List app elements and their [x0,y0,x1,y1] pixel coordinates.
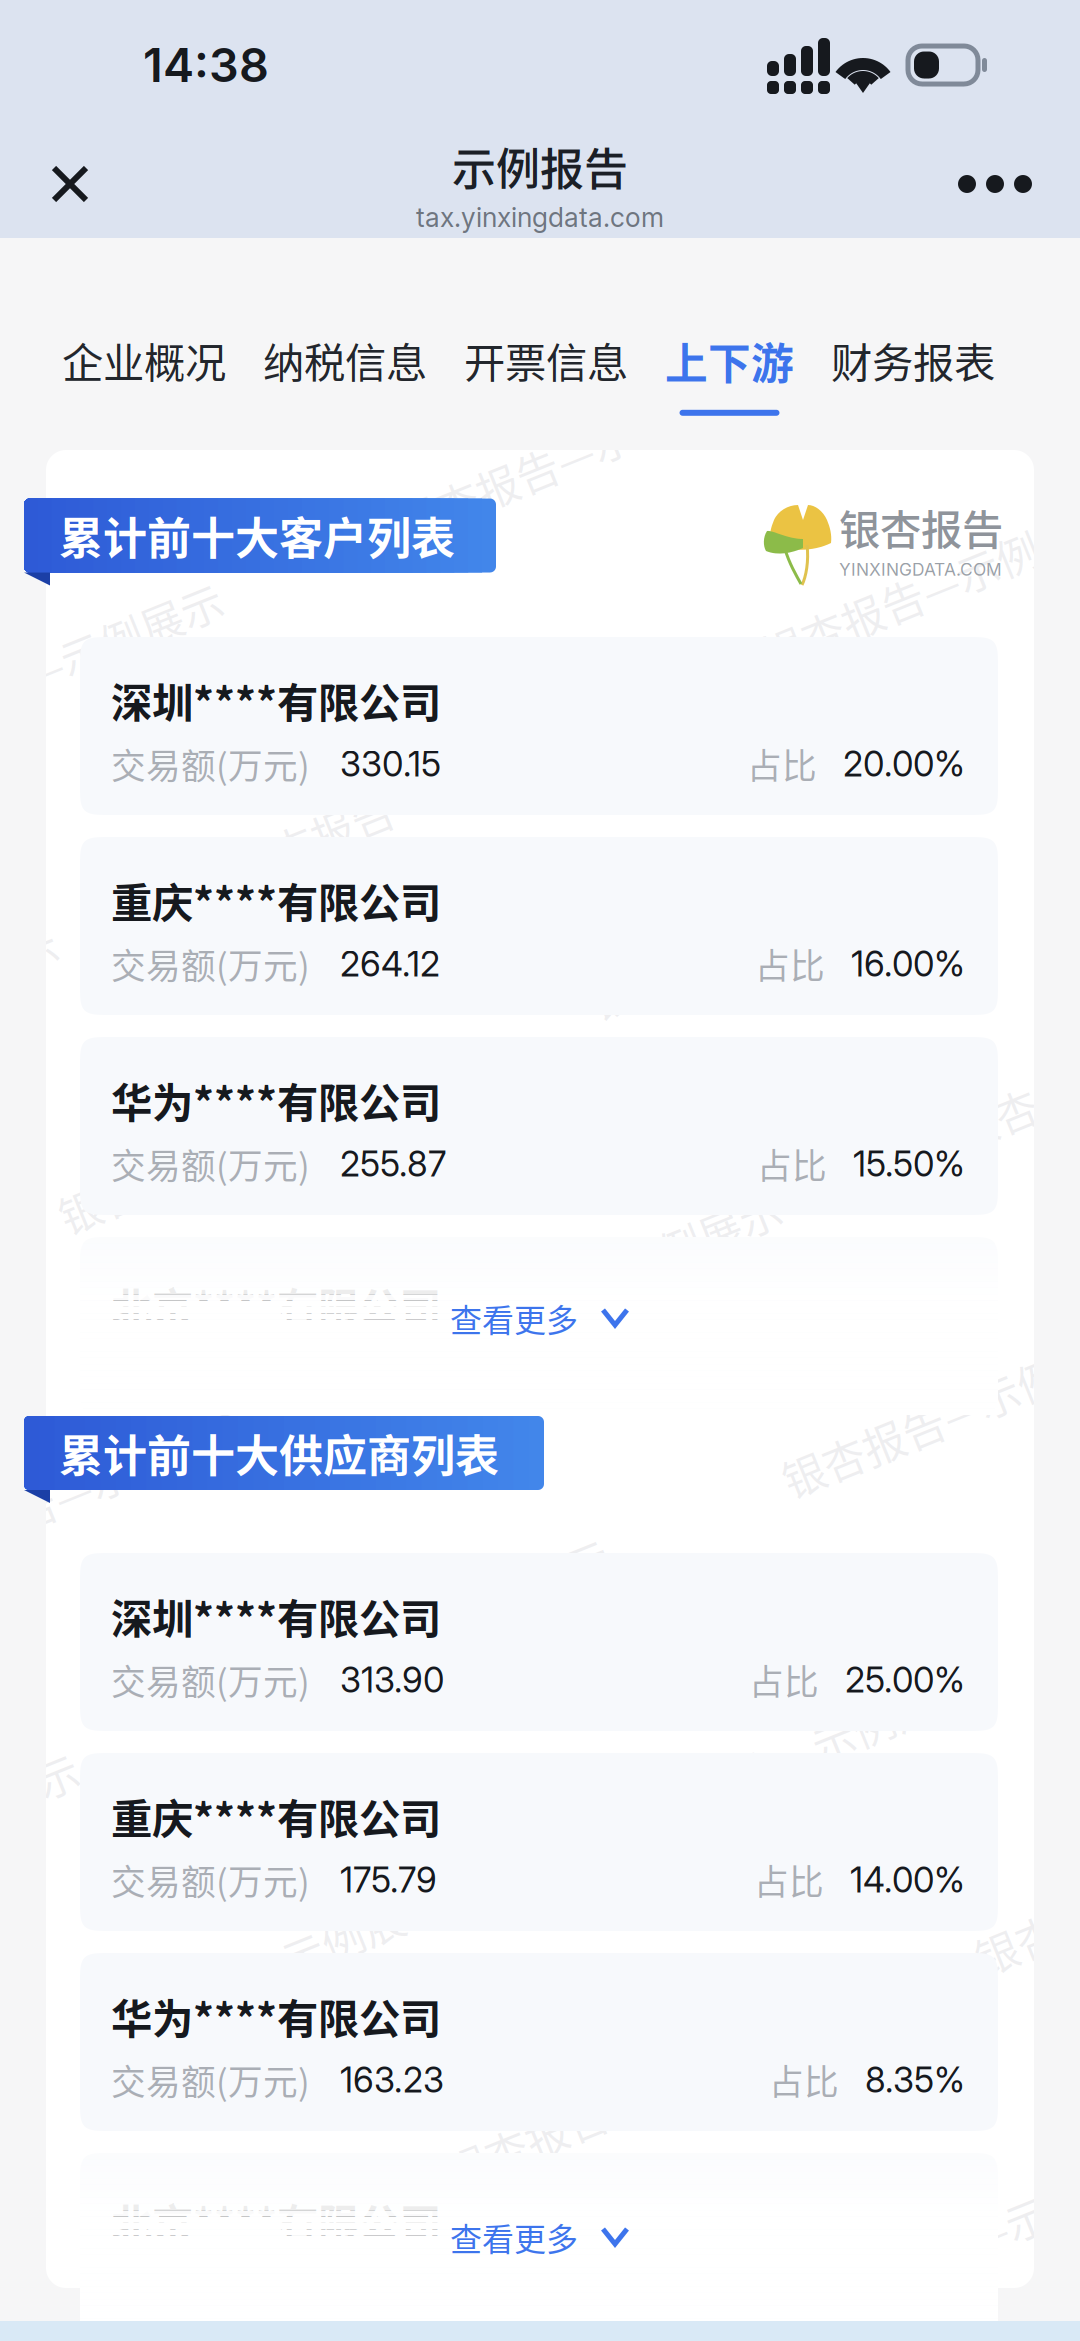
button[interactable]: 华为****有限公司 [80,1953,998,2131]
staticText: 银杏报告—示例展示 [708,1223,1080,1285]
button[interactable]: 查看更多 [370,1276,710,1360]
staticText: 银杏报告—示例展示 [418,450,800,512]
staticText: 交易额(万元) [111,1139,310,1189]
staticText: 交易额(万元) [111,2055,310,2105]
staticText: 累计前十大客户列表 [59,504,455,567]
staticText: 银杏报告—示例展示 [990,450,1080,512]
button[interactable]: 重庆****有限公司 [80,837,998,1015]
staticText: 银杏报告—示例展示 [136,708,518,770]
staticText: 华为****有限公司 [111,1070,441,1130]
staticText: 银杏报告—示例展示 [0,1997,228,2058]
staticText: 银杏报告—示例展示 [708,708,1080,770]
staticText: 交易额(万元) [111,1655,310,1705]
button[interactable]: 查看更多 [370,2195,710,2279]
staticText: 银杏报告—示例展示 [136,1739,518,1801]
staticText: 深圳****有限公司 [111,1586,441,1646]
staticText: 查看更多 [450,2214,578,2260]
staticText: 14.00% [850,1859,965,1901]
button[interactable]: 深圳****有限公司 [80,637,998,815]
button[interactable]: 深圳****有限公司 [80,1553,998,1731]
staticText: 银杏报告—示例展示 [418,1997,800,2058]
staticText: 银杏报告—示例展示 [708,1739,1080,1801]
staticText: 上下游 [665,330,794,392]
staticText: 深圳****有限公司 [111,670,441,730]
staticText: 银杏报告—示例展示 [418,1481,800,1543]
staticText: 15.50% [853,1143,965,1185]
staticText: 北京****有限公司 [111,1275,441,1335]
button[interactable]: Close [15,132,125,236]
staticText: 交易额(万元) [111,739,310,789]
staticText: 313.90 [340,1659,444,1701]
staticText: 重庆****有限公司 [111,1786,441,1846]
staticText: 14:38 [143,37,269,93]
staticText: 银杏报告 [839,497,1003,557]
button[interactable]: More options [940,132,1050,236]
staticText: YINXINGDATA.COM [839,559,1002,580]
staticText: 银杏报告—示例展示 [708,2254,1080,2316]
staticText: 重庆****有限公司 [111,870,441,930]
staticText: 163.23 [340,2059,444,2101]
staticText: 纳税信息 [263,330,427,390]
button[interactable]: 开票信息 [464,330,628,414]
staticText: 华为****有限公司 [111,1986,441,2046]
staticText: 示例报告 [452,134,628,198]
button[interactable]: 上下游 [665,330,794,416]
button[interactable]: 财务报表 [831,330,995,414]
staticText: 银杏报告—示例展示 [0,450,228,512]
staticText: 银杏报告—示例展示 [0,1481,228,1543]
staticText: 北京****有限公司 [111,2191,441,2251]
staticText: 银杏报告—示例展示 [990,966,1080,1027]
button[interactable]: 企业概况 [62,330,226,414]
staticText: tax.yinxingdata.com [416,201,664,233]
staticText: 20.00% [843,743,965,785]
button[interactable]: 华为****有限公司 [80,1037,998,1215]
staticText: 企业概况 [62,330,226,390]
staticText: 交易额(万元) [111,1855,310,1905]
staticText: 交易额(万元) [111,939,310,989]
staticText: 银杏报告—示例展示 [990,1481,1080,1543]
staticText: 8.35% [865,2059,965,2101]
button[interactable]: 纳税信息 [263,330,427,414]
staticText: 占比 [755,939,825,989]
staticText: 264.12 [340,943,440,985]
staticText: 银杏报告—示例展示 [990,1997,1080,2058]
staticText: 330.15 [340,743,441,785]
staticText: 银杏报告—示例展示 [0,966,228,1027]
staticText: 查看更多 [450,1295,578,1341]
staticText: 财务报表 [831,330,995,390]
staticText: 累计前十大供应商列表 [59,1421,499,1485]
staticText: 占比 [747,739,817,789]
staticText: 占比 [754,1855,824,1905]
staticText: 银杏报告—示例展示 [418,966,800,1027]
button[interactable]: 重庆****有限公司 [80,1753,998,1931]
staticText: 175.79 [340,1859,437,1901]
staticText: 占比 [749,1655,819,1705]
staticText: 16.00% [851,943,965,985]
staticText: 255.87 [340,1143,446,1185]
staticText: 占比 [769,2055,839,2105]
staticText: 开票信息 [464,330,628,390]
staticText: 25.00% [845,1659,965,1701]
staticText: 占比 [757,1139,827,1189]
